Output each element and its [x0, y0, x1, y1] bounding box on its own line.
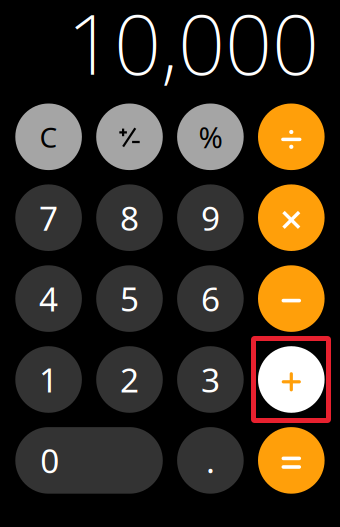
- button[interactable]: Clear: [15, 103, 82, 170]
- button[interactable]: Equals: [258, 427, 325, 494]
- button[interactable]: 7: [15, 184, 82, 251]
- staticText: 5: [120, 276, 139, 321]
- button[interactable]: Divide: [258, 103, 325, 170]
- staticText: 0: [40, 438, 59, 483]
- button[interactable]: 0: [15, 427, 163, 494]
- button[interactable]: Minus: [258, 265, 325, 332]
- button[interactable]: 6: [177, 265, 244, 332]
- staticText: %: [198, 117, 222, 156]
- button[interactable]: Percent: [177, 103, 244, 170]
- button[interactable]: 8: [96, 184, 163, 251]
- button[interactable]: Plus: [258, 346, 325, 413]
- staticText: 4: [39, 276, 58, 321]
- staticText: 10,000: [67, 0, 319, 97]
- button[interactable]: 4: [15, 265, 82, 332]
- staticText: C: [40, 118, 58, 155]
- button[interactable]: 9: [177, 184, 244, 251]
- button[interactable]: Decimal point: [177, 427, 244, 494]
- staticText: 2: [120, 357, 139, 402]
- staticText: 3: [201, 357, 220, 402]
- button[interactable]: 5: [96, 265, 163, 332]
- staticText: 9: [201, 196, 220, 240]
- button[interactable]: 2: [96, 346, 163, 413]
- button[interactable]: Plus Minus: [96, 103, 163, 170]
- staticText: 1: [39, 357, 58, 402]
- staticText: .: [206, 438, 215, 483]
- button[interactable]: Multiply: [258, 184, 325, 251]
- button[interactable]: 3: [177, 346, 244, 413]
- staticText: 8: [120, 196, 139, 240]
- button[interactable]: 1: [15, 346, 82, 413]
- staticText: 7: [39, 196, 58, 240]
- staticText: 6: [201, 276, 220, 321]
